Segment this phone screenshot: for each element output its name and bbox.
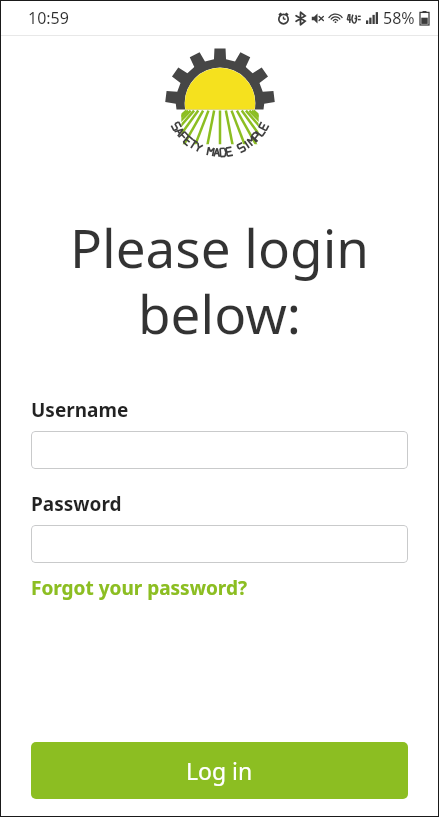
staticText: 58%: [383, 7, 415, 29]
button[interactable]: Log in: [31, 742, 408, 799]
staticText: 10:59: [28, 7, 69, 29]
button[interactable]: Forgot your password?: [31, 573, 247, 603]
staticText: Password: [31, 491, 122, 517]
staticText: Log in: [186, 755, 253, 786]
staticText: Please login below:: [22, 211, 417, 349]
button[interactable]: [31, 525, 408, 563]
staticText: Username: [31, 397, 129, 423]
button[interactable]: [31, 431, 408, 469]
staticText: Forgot your password?: [31, 575, 247, 601]
